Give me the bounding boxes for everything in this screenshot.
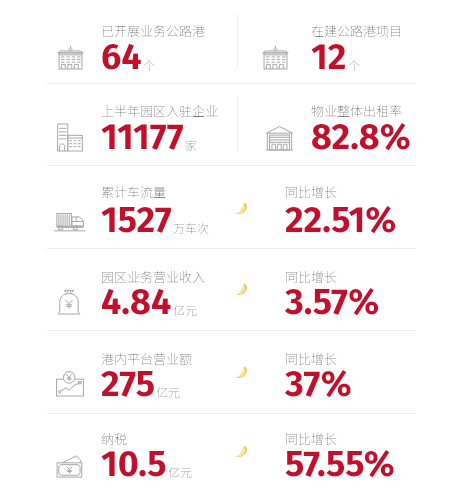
button[interactable]: 已开展业务公路港 xyxy=(0,0,237,83)
button[interactable]: 园区业务营业收入 xyxy=(0,248,450,330)
staticText: 亿元 xyxy=(156,383,181,400)
staticText: 个 xyxy=(348,56,361,73)
staticText: 64 xyxy=(101,35,142,78)
staticText: 同比增长 xyxy=(285,429,338,448)
staticText: 57.55% xyxy=(285,442,395,485)
staticText: 3.57% xyxy=(285,280,380,323)
staticText: 12 xyxy=(311,35,347,78)
staticText: 275 xyxy=(101,362,155,405)
staticText: 亿元 xyxy=(173,301,198,318)
staticText: 37% xyxy=(285,362,352,405)
staticText: 同比增长 xyxy=(285,182,338,201)
staticText: 同比增长 xyxy=(285,267,338,286)
button[interactable]: 纳税 xyxy=(0,413,450,495)
button[interactable]: 在建公路港项目 xyxy=(238,0,450,83)
staticText: 已开展业务公路港 xyxy=(101,21,206,40)
staticText: 万车次 xyxy=(173,219,210,236)
button[interactable]: 上半年园区入驻企业 xyxy=(0,83,237,165)
staticText: 园区业务营业收入 xyxy=(101,267,206,286)
staticText: 1527 xyxy=(101,198,172,241)
staticText: 亿元 xyxy=(168,463,193,480)
staticText: 10.5 xyxy=(101,442,167,485)
staticText: 累计车流量 xyxy=(101,182,167,201)
staticText: 个 xyxy=(143,56,156,73)
button[interactable]: 港内平台营业额 xyxy=(0,330,450,412)
staticText: 港内平台营业额 xyxy=(101,349,193,368)
button[interactable]: 物业整体出租率 xyxy=(238,83,450,165)
staticText: 纳税 xyxy=(101,429,128,448)
staticText: 同比增长 xyxy=(285,349,338,368)
staticText: 11177 xyxy=(101,115,184,158)
staticText: 上半年园区入驻企业 xyxy=(101,101,219,120)
staticText: 物业整体出租率 xyxy=(311,101,403,120)
staticText: 4.84 xyxy=(101,280,172,323)
staticText: 22.51% xyxy=(285,198,397,241)
staticText: 在建公路港项目 xyxy=(311,21,403,40)
staticText: 家 xyxy=(185,136,198,153)
staticText: 82.8% xyxy=(311,115,411,158)
button[interactable]: 累计车流量 xyxy=(0,165,450,247)
